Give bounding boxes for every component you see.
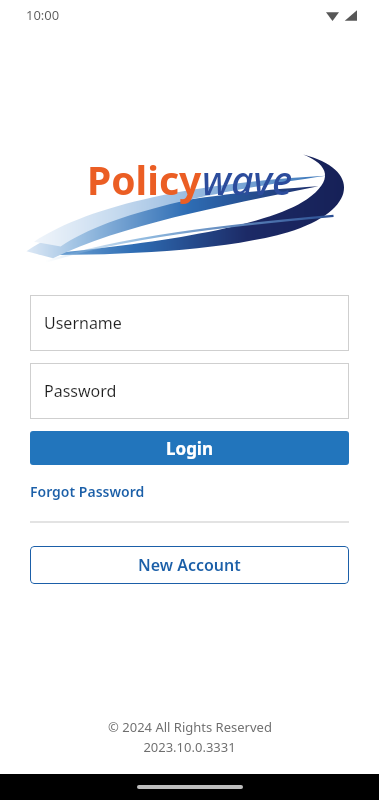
- staticText: © 2024 All Rights Reserved: [108, 718, 272, 736]
- button[interactable]: Username: [30, 295, 349, 351]
- staticText: Policy: [87, 153, 202, 206]
- staticText: Username: [44, 312, 122, 334]
- other: Wi-Fi: [326, 9, 339, 22]
- button[interactable]: Forgot Password: [30, 479, 145, 504]
- staticText: 2023.10.0.3331: [143, 738, 236, 756]
- other: Mobile signal: [344, 9, 357, 22]
- staticText: wave: [202, 153, 293, 206]
- button[interactable]: Login: [30, 431, 349, 465]
- staticText: Forgot Password: [30, 482, 145, 501]
- button[interactable]: New Account: [30, 546, 349, 584]
- button[interactable]: Password: [30, 363, 349, 419]
- staticText: New Account: [138, 554, 241, 576]
- staticText: 10:00: [26, 6, 60, 24]
- staticText: Password: [44, 380, 117, 402]
- staticText: Login: [166, 437, 214, 460]
